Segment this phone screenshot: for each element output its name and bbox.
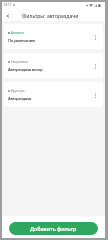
staticText: Активен [11,31,24,35]
staticText: Автораздача вечер [8,67,43,72]
button[interactable]: Ещё [91,91,99,99]
button[interactable]: Ещё [91,62,99,70]
staticText: Вручную [11,89,25,93]
button[interactable]: Ежедневно [4,53,103,78]
staticText: Автораздача [8,96,32,101]
button[interactable]: Ещё [91,33,99,41]
staticText: Добавить фильтр [30,225,77,232]
staticText: Фильтры: автораздачи [22,13,79,20]
button[interactable]: Назад [2,11,14,21]
button[interactable]: Активен [4,24,103,49]
staticText: По умолчанию [8,38,36,43]
button[interactable]: Вручную [4,82,103,107]
staticText: 10:11 [4,3,12,7]
staticText: Ежедневно [11,60,29,64]
button[interactable]: Добавить фильтр [9,222,98,235]
